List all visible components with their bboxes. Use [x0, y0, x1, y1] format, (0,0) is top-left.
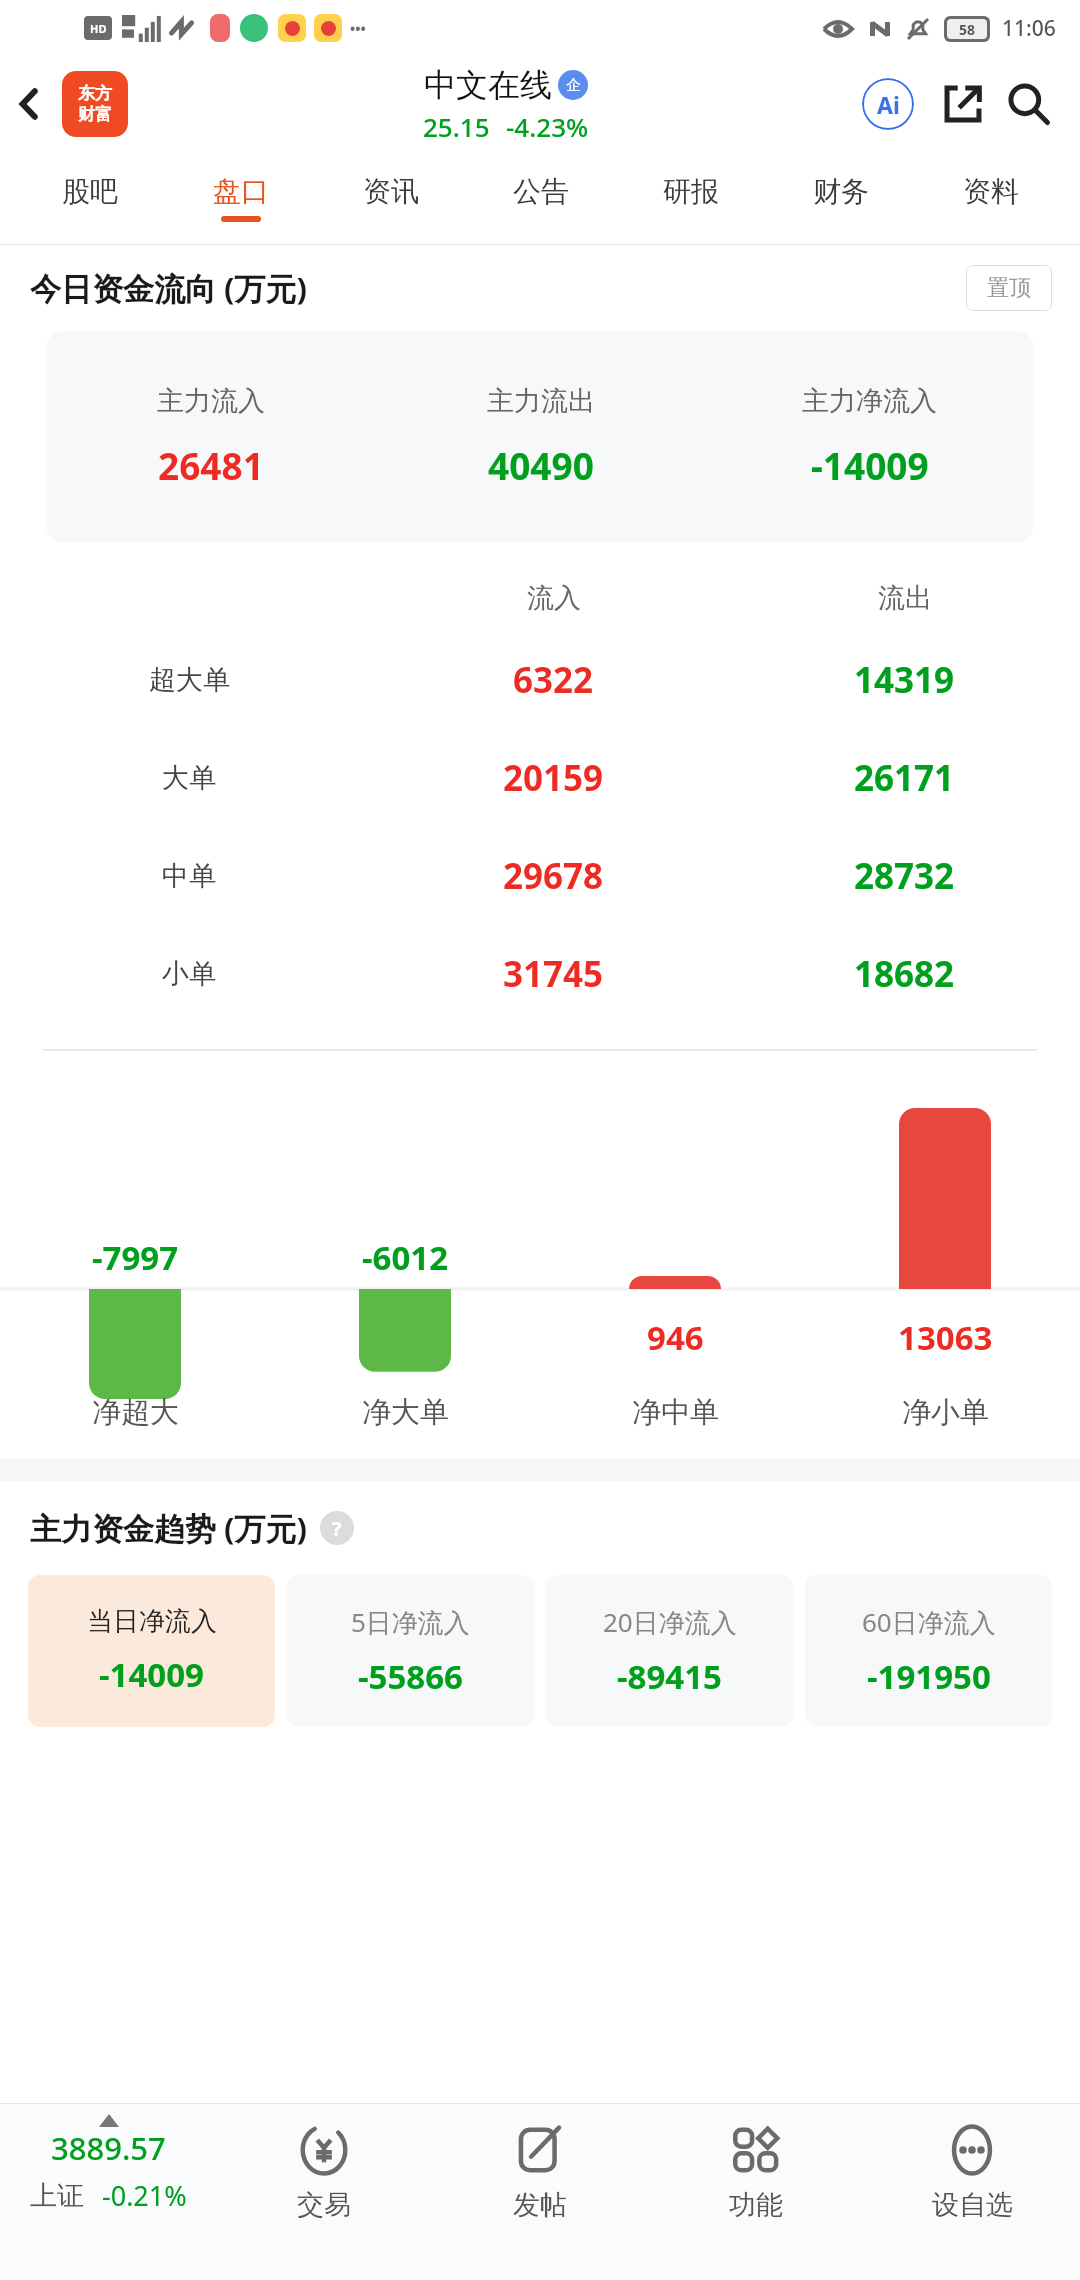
staticText: -89415: [617, 1654, 722, 1699]
staticText: 东方: [78, 83, 112, 104]
staticText: -191950: [867, 1654, 991, 1699]
staticText: 净小单: [902, 1394, 989, 1431]
staticText: 26171: [854, 754, 955, 802]
staticText: -55866: [358, 1654, 463, 1699]
staticText: 20日净流入: [603, 1604, 737, 1640]
staticText: 超大单: [149, 663, 230, 697]
button[interactable]: 发帖: [432, 2104, 648, 2280]
staticText: 31745: [503, 950, 604, 998]
staticText: 中单: [162, 859, 216, 893]
staticText: 29678: [503, 852, 604, 900]
button[interactable]: 资讯: [316, 152, 466, 244]
button[interactable]: 盘口: [165, 152, 316, 244]
button[interactable]: AI assistant: [854, 70, 922, 138]
staticText: Ai: [877, 89, 900, 120]
staticText: HD: [90, 21, 107, 36]
staticText: 40490: [488, 440, 594, 490]
staticText: 13063: [898, 1315, 993, 1360]
staticText: -0.21%: [102, 2177, 187, 2214]
button[interactable]: 研报: [616, 152, 766, 244]
staticText: 净超大: [92, 1394, 179, 1431]
button[interactable]: Search: [998, 73, 1060, 135]
staticText: 主力流入: [157, 384, 265, 418]
staticText: 主力流出: [487, 384, 595, 418]
staticText: 研报: [663, 174, 719, 209]
button[interactable]: 3889.57: [0, 2104, 216, 2280]
staticText: -7997: [92, 1235, 179, 1280]
button[interactable]: 5日净流入: [287, 1575, 534, 1727]
staticText: 财务: [813, 174, 869, 209]
staticText: 置顶: [987, 274, 1031, 302]
button[interactable]: 财务: [766, 152, 916, 244]
staticText: 58: [959, 20, 976, 39]
staticText: 今日资金流向 (万元): [30, 267, 308, 309]
staticText: -6012: [362, 1235, 449, 1280]
button[interactable]: Share: [932, 73, 994, 135]
button[interactable]: 公告: [466, 152, 616, 244]
staticText: 资料: [963, 174, 1019, 209]
staticText: 盘口: [213, 174, 269, 209]
button[interactable]: Back: [0, 75, 58, 133]
staticText: 946: [647, 1315, 704, 1360]
button[interactable]: 60日净流入: [805, 1575, 1052, 1727]
staticText: 6322: [513, 656, 594, 704]
staticText: 上证: [30, 2179, 84, 2213]
staticText: 流入: [527, 581, 581, 615]
staticText: •••: [350, 19, 366, 38]
staticText: ?: [332, 1515, 342, 1542]
button[interactable]: 设自选: [864, 2104, 1080, 2280]
staticText: 发帖: [513, 2188, 567, 2222]
staticText: 公告: [513, 174, 569, 209]
staticText: 财富: [78, 104, 112, 125]
staticText: 28732: [854, 852, 955, 900]
button[interactable]: 置顶: [966, 265, 1052, 311]
staticText: 净大单: [362, 1394, 449, 1431]
button[interactable]: Help: [320, 1511, 354, 1545]
staticText: 交易: [297, 2188, 351, 2222]
staticText: -14009: [811, 440, 929, 490]
staticText: 3889.57: [51, 2127, 166, 2169]
button[interactable]: 交易: [216, 2104, 432, 2280]
staticText: 当日净流入: [87, 1605, 217, 1638]
staticText: 功能: [729, 2188, 783, 2222]
staticText: 20159: [503, 754, 604, 802]
button[interactable]: 东方: [62, 71, 128, 137]
staticText: 主力净流入: [802, 384, 937, 418]
staticText: 5日净流入: [351, 1604, 470, 1640]
staticText: -14009: [99, 1652, 204, 1697]
staticText: 流出: [878, 581, 932, 615]
staticText: 26481: [158, 440, 264, 490]
button[interactable]: 当日净流入: [28, 1575, 275, 1727]
staticText: 企: [566, 76, 581, 95]
staticText: -4.23%: [506, 109, 589, 144]
staticText: 小单: [162, 957, 216, 991]
staticText: 主力资金趋势 (万元): [30, 1507, 308, 1549]
staticText: 18682: [854, 950, 955, 998]
staticText: 中文在线: [424, 65, 552, 105]
staticText: 资讯: [363, 174, 419, 209]
button[interactable]: 股吧: [14, 152, 165, 244]
staticText: 设自选: [932, 2188, 1013, 2222]
staticText: 60日净流入: [862, 1604, 996, 1640]
button[interactable]: 功能: [648, 2104, 864, 2280]
staticText: 25.15: [423, 109, 490, 144]
staticText: 11:06: [1002, 14, 1056, 43]
staticText: 大单: [162, 761, 216, 795]
staticText: 净中单: [632, 1394, 719, 1431]
button[interactable]: 资料: [916, 152, 1066, 244]
button[interactable]: 20日净流入: [546, 1575, 793, 1727]
staticText: 14319: [854, 656, 955, 704]
staticText: 股吧: [62, 174, 118, 209]
